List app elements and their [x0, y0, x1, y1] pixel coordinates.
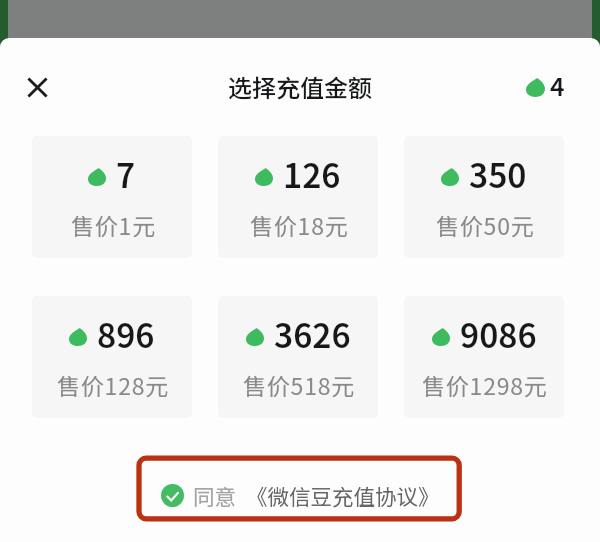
staticText: 350 — [469, 150, 527, 198]
button[interactable]: 4 — [526, 70, 565, 106]
button[interactable]: 7 — [32, 136, 192, 258]
button[interactable]: 9086 — [404, 296, 564, 418]
staticText: 售价1元 — [71, 208, 156, 241]
staticText: 售价18元 — [250, 208, 349, 241]
staticText: 3626 — [274, 310, 351, 358]
staticText: 售价1298元 — [422, 368, 548, 401]
staticText: 9086 — [460, 310, 537, 358]
staticText: 896 — [97, 310, 155, 358]
button[interactable]: 896 — [32, 296, 192, 418]
staticText: 4 — [550, 67, 565, 103]
staticText: 售价50元 — [436, 208, 535, 241]
staticText: 126 — [283, 150, 341, 198]
staticText: 售价128元 — [57, 368, 170, 401]
staticText: 《微信豆充值协议》 — [246, 480, 440, 511]
button[interactable]: Close — [18, 68, 57, 107]
staticText: 7 — [116, 150, 136, 198]
button[interactable]: 350 — [404, 136, 564, 258]
staticText: 选择充值金额 — [228, 69, 372, 104]
button[interactable]: 3626 — [218, 296, 378, 418]
staticText: 售价518元 — [243, 368, 356, 401]
staticText: 同意 — [193, 480, 237, 511]
button[interactable]: 同意 — [161, 480, 440, 511]
button[interactable]: 126 — [218, 136, 378, 258]
